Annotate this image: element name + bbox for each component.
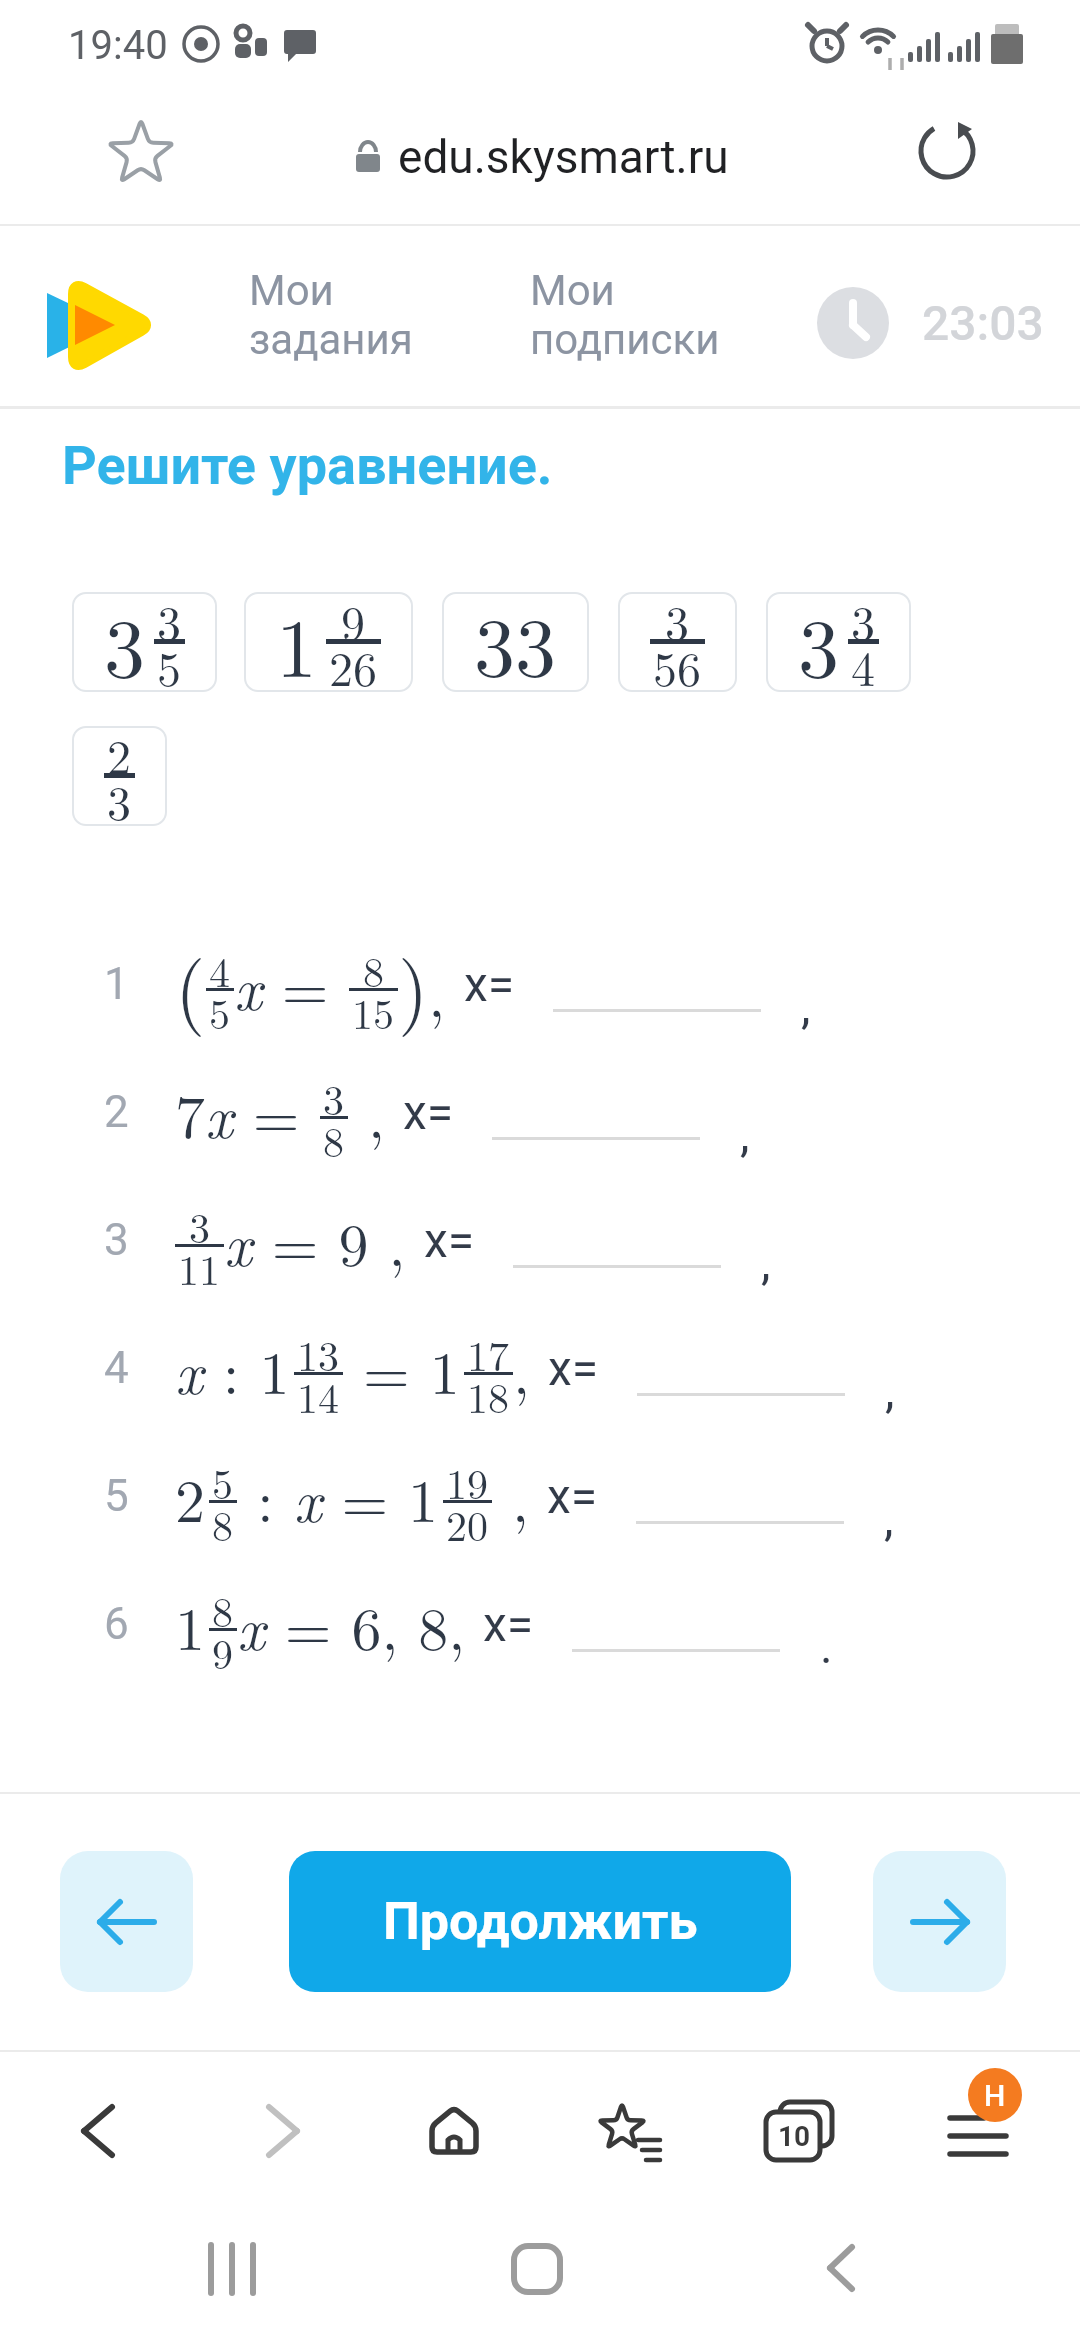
button[interactable]: 1: [244, 592, 413, 692]
staticText: 8: [363, 940, 385, 1000]
staticText: 10: [778, 2120, 811, 2153]
button[interactable]: Продолжить: [289, 1851, 791, 1992]
staticText: x : 1: [175, 1326, 290, 1411]
staticText: H: [984, 2078, 1006, 2113]
button[interactable]: 3: [766, 592, 911, 692]
staticText: 14: [297, 1366, 340, 1426]
staticText: 3: [851, 586, 876, 654]
staticText: 9: [212, 1622, 234, 1682]
button[interactable]: Мои: [530, 266, 720, 364]
staticText: 4: [104, 1342, 129, 1394]
staticText: 3: [104, 1214, 129, 1266]
staticText: подписки: [530, 315, 720, 364]
button[interactable]: [208, 2245, 260, 2297]
staticText: 2: [104, 1086, 129, 1138]
button[interactable]: [916, 120, 978, 182]
staticText: Продолжить: [383, 1891, 698, 1952]
staticText: 4: [851, 632, 876, 700]
staticText: 1: [104, 958, 129, 1010]
button[interactable]: [818, 2245, 866, 2293]
staticText: ,: [884, 1490, 894, 1546]
staticText: ),: [398, 929, 446, 1040]
staticText: ,: [801, 978, 811, 1034]
button[interactable]: edu.skysmart.ru: [352, 130, 729, 184]
button[interactable]: [873, 1851, 1006, 1992]
button[interactable]: [596, 2102, 664, 2170]
staticText: 7x =: [175, 1070, 320, 1155]
staticText: x=: [483, 1596, 534, 1652]
staticText: 8: [212, 1494, 234, 1554]
staticText: 8: [323, 1110, 345, 1170]
button[interactable]: [76, 2107, 124, 2155]
button[interactable]: 3: [72, 592, 217, 692]
staticText: Мои: [249, 266, 334, 315]
staticText: ,: [348, 1070, 385, 1155]
staticText: 3: [323, 1068, 345, 1128]
button[interactable]: H: [944, 2092, 1028, 2176]
staticText: ,: [885, 1362, 895, 1418]
staticText: 18: [467, 1366, 510, 1426]
staticText: 26: [329, 632, 378, 700]
staticText: 56: [653, 632, 702, 700]
staticText: 4: [209, 940, 231, 1000]
staticText: 6: [104, 1598, 129, 1650]
staticText: задания: [249, 315, 413, 364]
staticText: 15: [352, 982, 395, 1042]
staticText: x=: [424, 1212, 475, 1268]
staticText: x = 9 ,: [224, 1198, 406, 1283]
staticText: 1: [175, 1582, 205, 1667]
staticText: x = 6, 8,: [237, 1582, 465, 1667]
staticText: 3: [798, 585, 840, 701]
staticText: : x = 1: [237, 1454, 439, 1539]
staticText: x=: [464, 956, 515, 1012]
staticText: 3: [107, 766, 132, 834]
staticText: Решите уравнение.: [62, 434, 553, 497]
staticText: .: [820, 1618, 833, 1674]
staticText: 33: [474, 584, 557, 700]
staticText: (: [175, 929, 206, 1040]
staticText: 8: [212, 1580, 234, 1640]
staticText: 20: [446, 1494, 489, 1554]
staticText: 3: [189, 1196, 211, 1256]
staticText: 19: [446, 1452, 489, 1512]
staticText: 3: [665, 586, 690, 654]
staticText: ,: [761, 1234, 771, 1290]
button[interactable]: [511, 2243, 563, 2295]
staticText: = 1: [343, 1326, 460, 1411]
button[interactable]: 3: [618, 592, 737, 692]
staticText: 3: [157, 586, 182, 654]
staticText: 1: [276, 585, 318, 701]
staticText: 5: [157, 632, 182, 700]
staticText: 3: [104, 585, 146, 701]
staticText: ,: [492, 1454, 529, 1539]
button[interactable]: 10: [766, 2102, 836, 2172]
button[interactable]: 33: [442, 592, 589, 692]
staticText: ,: [513, 1326, 530, 1411]
button[interactable]: [257, 2107, 305, 2155]
button[interactable]: [106, 118, 176, 188]
staticText: 5: [104, 1470, 129, 1522]
staticText: 17: [467, 1324, 510, 1384]
staticText: 2: [107, 720, 132, 788]
staticText: x =: [234, 942, 349, 1027]
staticText: 5: [209, 982, 231, 1042]
staticText: 5: [212, 1452, 234, 1512]
button[interactable]: Мои: [249, 266, 413, 364]
staticText: 9: [341, 586, 366, 654]
button[interactable]: [428, 2104, 480, 2156]
staticText: 19:40: [68, 22, 168, 69]
staticText: x=: [403, 1084, 454, 1140]
staticText: ,: [740, 1106, 750, 1162]
staticText: 11: [178, 1238, 221, 1298]
staticText: edu.skysmart.ru: [398, 130, 729, 184]
staticText: Мои: [530, 266, 615, 315]
staticText: 2: [175, 1454, 205, 1539]
staticText: x=: [548, 1340, 599, 1396]
staticText: x=: [547, 1468, 598, 1524]
staticText: 13: [297, 1324, 340, 1384]
button[interactable]: [60, 1851, 193, 1992]
staticText: 23:03: [922, 295, 1044, 351]
button[interactable]: 2: [72, 726, 167, 826]
